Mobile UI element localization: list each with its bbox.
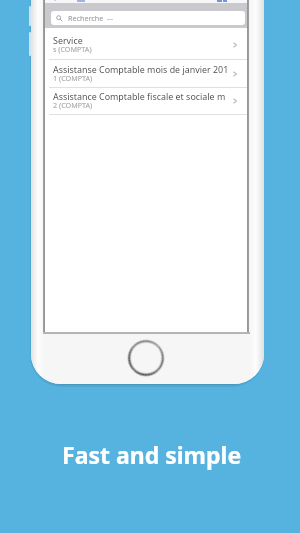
- staticText: 2 (COMPTA): [53, 100, 93, 110]
- staticText: Recherche: [68, 13, 104, 23]
- staticText: Assistance Comptable fiscale et sociale …: [53, 90, 226, 102]
- staticText: Service: [53, 34, 83, 46]
- button[interactable]: Assistance Comptable fiscale et sociale …: [45, 88, 248, 115]
- button[interactable]: Home: [127, 339, 165, 377]
- staticText: Assistanse Comptable mois de janvier 201: [53, 63, 229, 75]
- button[interactable]: Assistanse Comptable mois de janvier 201: [45, 60, 248, 88]
- staticText: Fast and simple: [62, 439, 242, 470]
- button[interactable]: Service: [45, 30, 248, 60]
- button[interactable]: Recherche: [51, 11, 245, 25]
- staticText: 1 (COMPTA): [53, 73, 93, 83]
- staticText: s (COMPTA): [53, 44, 92, 54]
